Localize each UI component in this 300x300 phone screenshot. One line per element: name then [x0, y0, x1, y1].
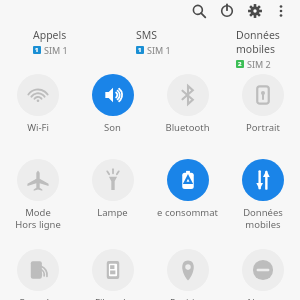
- button[interactable]: Position: [150, 249, 225, 300]
- button[interactable]: Lampe: [75, 159, 150, 219]
- button[interactable]: Portrait: [225, 74, 300, 134]
- staticText: Données mobiles: [243, 206, 283, 231]
- button[interactable]: Filtre de lum. bleue: [75, 249, 150, 300]
- button[interactable]: More options: [270, 0, 292, 22]
- button[interactable]: Mode Hors ligne: [0, 159, 75, 231]
- staticText: 1: [35, 46, 39, 54]
- staticText: 2: [238, 60, 242, 68]
- staticText: 1: [138, 46, 142, 54]
- staticText: Filtre de lum. bleue: [89, 296, 137, 300]
- button[interactable]: Son: [75, 74, 150, 134]
- staticText: e consommat: [157, 206, 218, 219]
- button[interactable]: Power off: [216, 0, 238, 22]
- staticText: Wi-Fi: [27, 121, 49, 134]
- staticText: SIM 2: [247, 58, 271, 70]
- button[interactable]: Search: [188, 0, 210, 22]
- staticText: SIM 1: [147, 44, 171, 56]
- staticText: Position: [170, 296, 206, 300]
- button[interactable]: Pt accès mobile: [0, 249, 75, 300]
- button[interactable]: Données mobiles: [225, 159, 300, 231]
- button[interactable]: Bluetooth: [150, 74, 225, 134]
- staticText: Lampe: [97, 206, 128, 219]
- button[interactable]: e consommat: [150, 159, 225, 219]
- button[interactable]: Settings: [244, 0, 266, 22]
- button[interactable]: Ne pas déranger: [225, 249, 300, 300]
- staticText: Ne pas déranger: [242, 296, 284, 300]
- staticText: Portrait: [246, 121, 280, 134]
- button[interactable]: Wi-Fi: [0, 74, 75, 134]
- staticText: Données mobiles: [236, 28, 300, 56]
- staticText: Son: [104, 121, 121, 134]
- staticText: SIM 1: [44, 44, 68, 56]
- staticText: Mode Hors ligne: [15, 206, 61, 231]
- staticText: Bluetooth: [165, 121, 210, 134]
- staticText: Appels: [33, 28, 67, 42]
- staticText: Pt accès mobile: [19, 296, 56, 300]
- staticText: SMS: [136, 28, 158, 42]
